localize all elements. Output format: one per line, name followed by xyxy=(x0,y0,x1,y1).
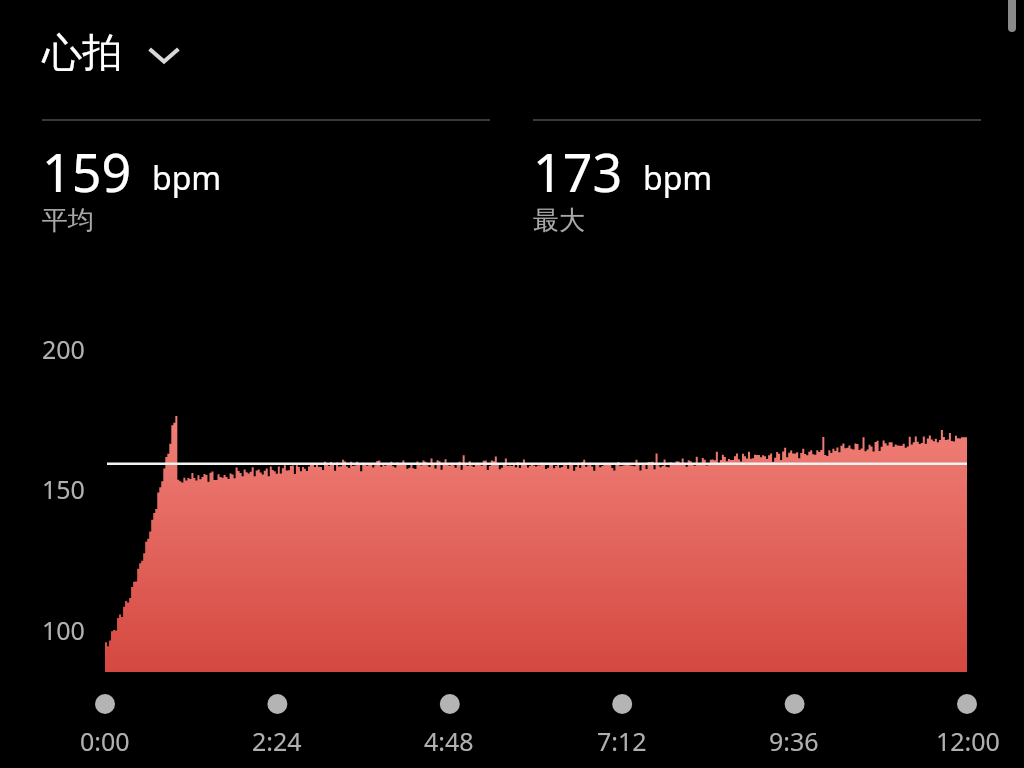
staticText: 最大 xyxy=(533,204,585,237)
staticText: 7:12 xyxy=(597,724,647,758)
staticText: 173 xyxy=(533,136,623,207)
staticText: bpm xyxy=(643,156,713,200)
staticText: 平均 xyxy=(42,204,94,237)
staticText: 100 xyxy=(42,613,85,647)
staticText: 12:00 xyxy=(936,724,1000,758)
staticText: bpm xyxy=(152,156,222,200)
staticText: 2:24 xyxy=(252,724,302,758)
staticText: 159 xyxy=(42,136,132,207)
staticText: 心拍 xyxy=(42,27,122,77)
staticText: 0:00 xyxy=(80,724,130,758)
staticText: 200 xyxy=(42,332,85,366)
button[interactable]: 173 xyxy=(533,134,981,244)
staticText: 4:48 xyxy=(424,724,474,758)
staticText: 150 xyxy=(42,472,85,506)
button[interactable]: 159 xyxy=(42,134,490,244)
staticText: 9:36 xyxy=(769,724,819,758)
button[interactable]: 心拍 expand xyxy=(34,22,194,84)
